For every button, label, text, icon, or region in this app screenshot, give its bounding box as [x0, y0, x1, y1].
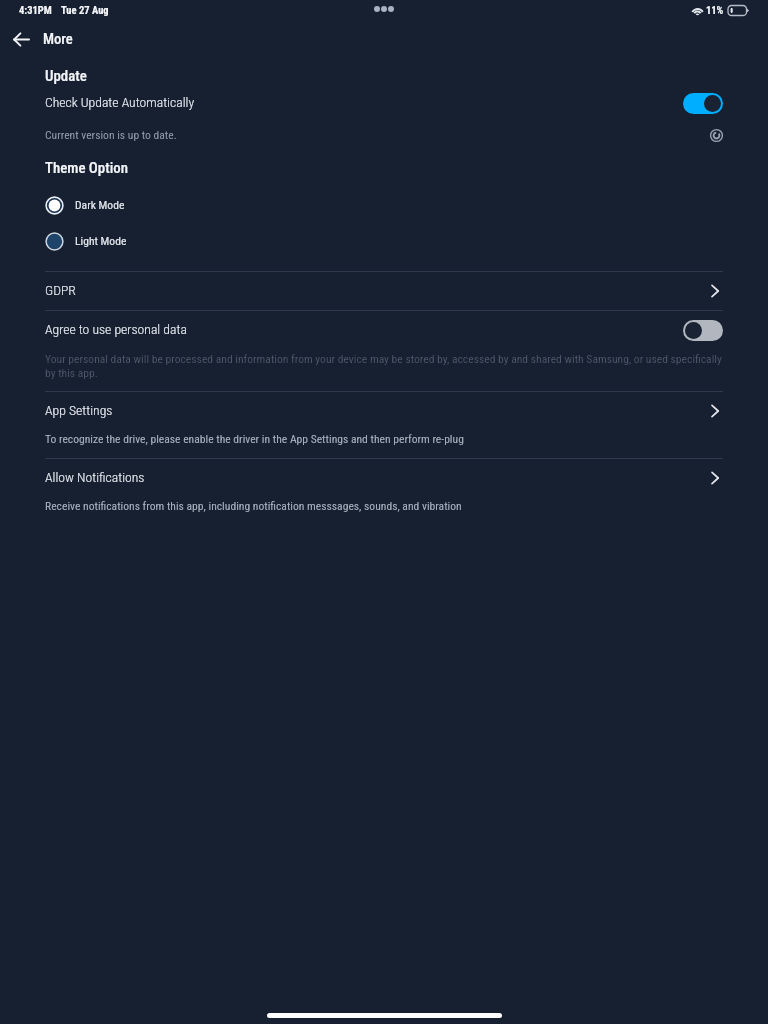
staticText: Allow Notifications	[45, 469, 145, 485]
button[interactable]: Refresh	[701, 124, 723, 146]
staticText: App Settings	[45, 402, 113, 418]
staticText: Your personal data will be processed and…	[45, 352, 723, 380]
staticText: To recognize the drive, please enable th…	[45, 432, 464, 446]
staticText: 4:31PM	[19, 4, 52, 16]
staticText: Check Update Automatically	[45, 94, 195, 110]
staticText: Receive notifications from this app, inc…	[45, 499, 462, 513]
staticText: 11%	[706, 4, 724, 16]
staticText: Tue 27 Aug	[61, 4, 109, 16]
staticText: Theme Option	[45, 159, 129, 176]
button[interactable]: Agree to use personal data	[45, 315, 723, 343]
button[interactable]	[683, 93, 723, 114]
button[interactable]: GDPR	[45, 271, 723, 309]
staticText: More	[43, 30, 73, 47]
button[interactable]	[683, 320, 723, 341]
staticText: Agree to use personal data	[45, 321, 187, 337]
staticText: Current version is up to date.	[45, 128, 177, 142]
staticText: Dark Mode	[75, 198, 125, 212]
staticText: Light Mode	[75, 234, 127, 248]
button[interactable]: Light Mode	[45, 231, 127, 251]
button[interactable]: App Settings	[45, 395, 723, 425]
staticText: GDPR	[45, 282, 76, 298]
button[interactable]: Allow Notifications	[45, 462, 723, 492]
button[interactable]: Check Update Automatically	[45, 87, 723, 117]
button[interactable]: Dark Mode	[45, 195, 125, 215]
button[interactable]: Back	[4, 22, 39, 57]
staticText: Update	[45, 67, 87, 84]
